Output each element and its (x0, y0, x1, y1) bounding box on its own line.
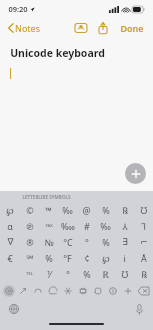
staticText: ℹ (123, 252, 126, 264)
button[interactable]: °F (58, 250, 77, 266)
staticText: ∃ (122, 237, 128, 247)
button[interactable]: Å (134, 250, 153, 266)
staticText: ℗ (26, 220, 34, 232)
button[interactable]: ° (58, 266, 77, 282)
button[interactable]: ℞ (115, 202, 134, 218)
button[interactable]: № (39, 234, 58, 250)
button[interactable]: ‰ (96, 218, 115, 234)
staticText: °C (63, 236, 73, 248)
button[interactable]: ℗ (20, 218, 39, 234)
staticText: © (26, 204, 34, 216)
staticText: 09:20 (8, 4, 28, 14)
button[interactable]: ‱ (58, 218, 77, 234)
staticText: ® (26, 236, 34, 248)
button[interactable]: Category 6 (90, 282, 105, 299)
staticText: € (7, 252, 13, 264)
staticText: ° (85, 236, 89, 248)
button[interactable]: α (0, 218, 20, 234)
button[interactable]: °C (58, 234, 77, 250)
button[interactable]: Add people (73, 20, 89, 36)
button[interactable]: ⌐ (134, 234, 153, 250)
staticText: Done (120, 22, 144, 34)
staticText: ™ (45, 204, 52, 216)
button[interactable]: ⅂ (134, 218, 153, 234)
button[interactable]: ⅟ (39, 266, 58, 282)
button[interactable]: ‰ (58, 202, 77, 218)
button[interactable]: Category 8 (120, 282, 135, 299)
staticText: LETTERLIKE SYMBOLS (22, 194, 71, 200)
button[interactable]: Dictate (131, 301, 147, 317)
button[interactable]: Category 3 (45, 282, 60, 299)
button[interactable]: Category 4 (60, 282, 75, 299)
staticText: № (44, 236, 54, 248)
button[interactable]: % (96, 202, 115, 218)
staticText: FAX (45, 223, 53, 229)
button[interactable]: Share (95, 20, 111, 36)
staticText: ⅄ (122, 220, 128, 232)
staticText: α (7, 220, 13, 232)
button[interactable]: % (96, 234, 115, 250)
button[interactable]: Delete (135, 282, 151, 299)
staticText: @ (82, 204, 91, 216)
staticText: Notes (15, 22, 40, 34)
button[interactable]: ∇ (0, 234, 20, 250)
button[interactable]: Category 5 (75, 282, 90, 299)
button[interactable]: @ (77, 202, 96, 218)
button[interactable]: ℠ (20, 250, 39, 266)
button[interactable]: ℧ (115, 266, 134, 282)
staticText: ℞ (141, 268, 147, 280)
staticText: # (84, 220, 90, 232)
button[interactable]: TEL (20, 266, 39, 282)
button[interactable]: % (39, 250, 58, 266)
button[interactable]: € (0, 250, 20, 266)
staticText: °F (63, 252, 72, 264)
button[interactable]: ® (20, 234, 39, 250)
button[interactable]: ℘ (0, 202, 20, 218)
button[interactable]: ¢ (77, 250, 96, 266)
staticText: ° (66, 268, 70, 280)
staticText: % (102, 236, 110, 248)
button[interactable]: Switch keyboard (6, 301, 22, 317)
staticText: ‰ (100, 220, 111, 232)
staticText: ⅂ (141, 220, 146, 232)
button[interactable]: % (77, 266, 96, 282)
button[interactable]: # (77, 218, 96, 234)
button[interactable]: © (20, 202, 39, 218)
button[interactable]: Category 0 (2, 282, 16, 299)
button[interactable]: ℘ (96, 250, 115, 266)
staticText: ℧ (140, 204, 147, 216)
button[interactable]: ⅄ (115, 218, 134, 234)
staticText: % (102, 204, 110, 216)
staticText: ‰ (62, 204, 73, 216)
staticText: ℧ (121, 268, 128, 280)
button[interactable]: Category 2 (30, 282, 45, 299)
staticText: ‱ (61, 220, 75, 232)
button[interactable]: FAX (39, 218, 58, 234)
button[interactable]: Add (125, 163, 146, 184)
staticText: % (83, 268, 91, 280)
staticText: % (45, 252, 53, 264)
button[interactable]: ∃ (115, 234, 134, 250)
button[interactable]: Category 7 (105, 282, 120, 299)
button[interactable]: ℧ (134, 202, 153, 218)
staticText: ℘ (6, 204, 14, 216)
staticText: ℠ (26, 252, 34, 264)
button[interactable]: ™ (39, 202, 58, 218)
staticText: ⅟ (47, 268, 51, 280)
staticText: ¢ (84, 252, 90, 264)
button[interactable]: Category 1 (16, 282, 30, 299)
button[interactable]: Done (117, 20, 147, 36)
button[interactable]: ℹ (115, 250, 134, 266)
button[interactable]: ° (77, 234, 96, 250)
staticText: ℝ (102, 268, 109, 280)
button[interactable]: ℝ (96, 266, 115, 282)
staticText: TEL (26, 271, 33, 277)
button[interactable]: Notes (6, 20, 42, 36)
staticText: Å (141, 252, 147, 264)
staticText: ℞ (122, 204, 128, 216)
staticText: ⌐ (140, 237, 148, 247)
staticText: ℘ (102, 252, 110, 264)
staticText: Unicode keyboard (10, 46, 105, 60)
button[interactable]: ℞ (134, 266, 153, 282)
